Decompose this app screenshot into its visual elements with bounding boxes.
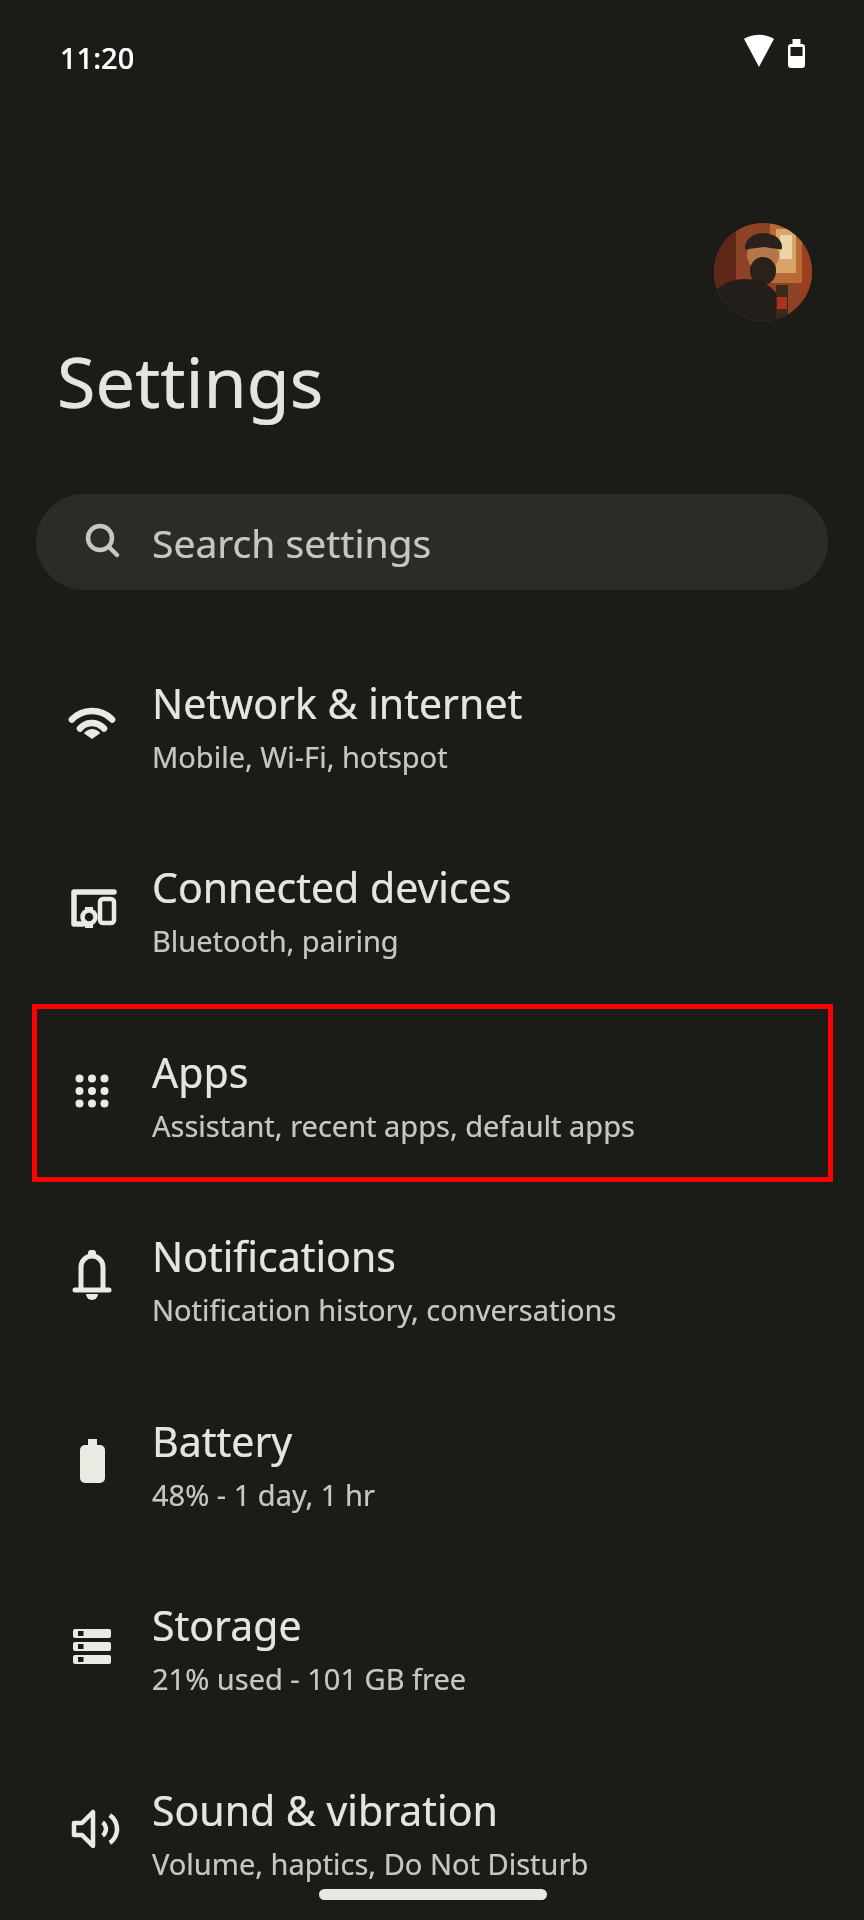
staticText: Notifications (152, 1228, 396, 1282)
staticText: Mobile, Wi-Fi, hotspot (152, 737, 448, 776)
button[interactable]: Storage (0, 1559, 864, 1743)
staticText: Notification history, conversations (152, 1290, 617, 1329)
button[interactable]: Apps (0, 1006, 864, 1190)
button[interactable]: Notifications (0, 1190, 864, 1374)
staticText: Network & internet (152, 675, 523, 729)
button[interactable]: Network & internet (0, 637, 864, 821)
button[interactable]: Battery (0, 1375, 864, 1559)
button[interactable]: Connected devices (0, 821, 864, 1005)
staticText: Settings (57, 333, 324, 428)
button[interactable]: Sound & vibration (0, 1744, 864, 1920)
staticText: Apps (152, 1044, 249, 1098)
button[interactable]: Search settings (36, 494, 828, 590)
staticText: 21% used - 101 GB free (152, 1659, 467, 1698)
staticText: 11:20 (60, 38, 135, 77)
staticText: Battery (152, 1413, 293, 1467)
staticText: 48% - 1 day, 1 hr (152, 1475, 375, 1514)
staticText: Connected devices (152, 859, 512, 913)
staticText: Sound & vibration (152, 1782, 498, 1836)
button[interactable] (714, 223, 812, 321)
staticText: Bluetooth, pairing (152, 921, 399, 960)
staticText: Assistant, recent apps, default apps (152, 1106, 635, 1145)
staticText: Search settings (152, 516, 432, 569)
staticText: Volume, haptics, Do Not Disturb (152, 1844, 589, 1883)
staticText: Storage (152, 1597, 302, 1651)
